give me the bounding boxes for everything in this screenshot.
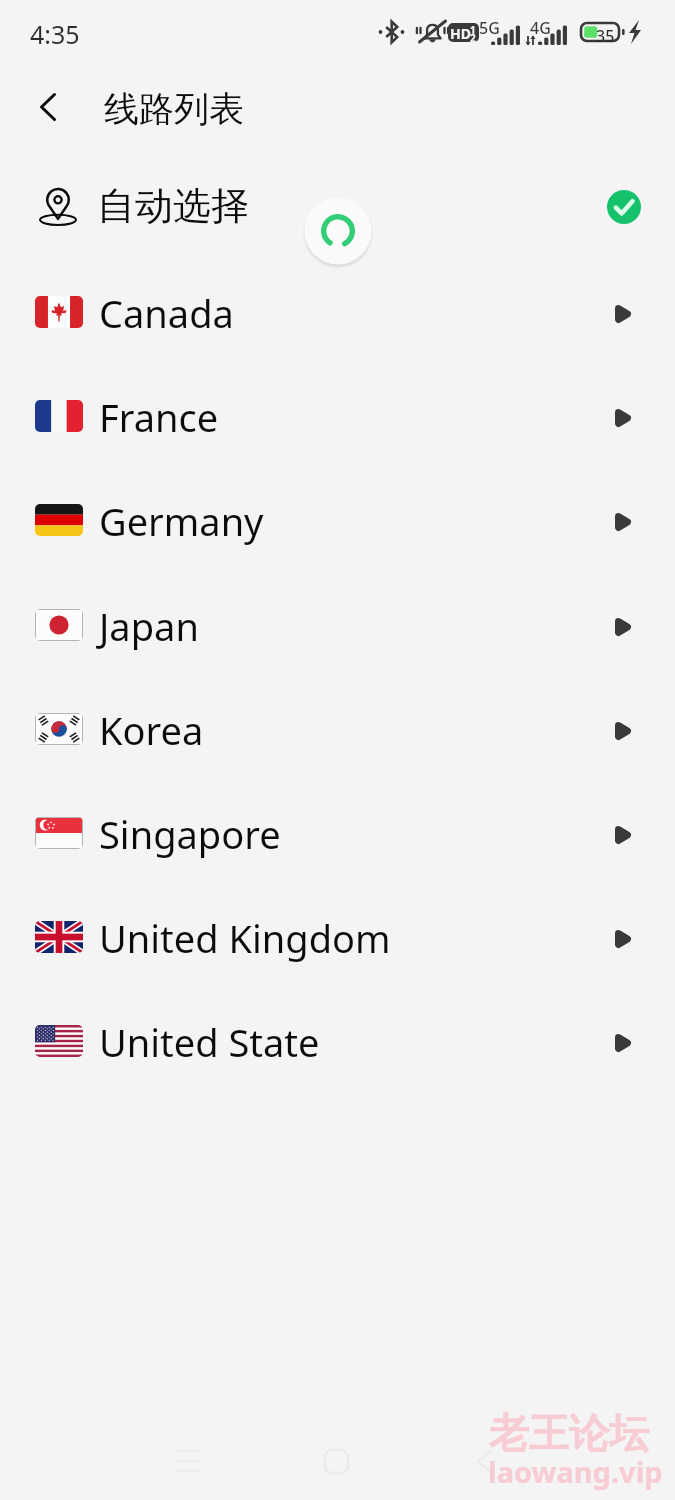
staticText: Germany <box>99 495 264 547</box>
button[interactable]: Back <box>454 1431 514 1491</box>
button[interactable]: 自动选择 <box>0 155 675 259</box>
button[interactable]: France <box>0 366 675 470</box>
staticText: 1 <box>470 23 476 37</box>
staticText: Singapore <box>99 808 281 860</box>
button[interactable]: Back <box>24 83 72 131</box>
button[interactable]: Korea <box>0 679 675 783</box>
staticText: 老王论坛 <box>489 1408 649 1458</box>
staticText: France <box>99 391 219 443</box>
button[interactable]: United State <box>0 991 675 1095</box>
staticText: United Kingdom <box>99 912 391 964</box>
staticText: 自动选择 <box>97 182 249 230</box>
other: Selected <box>607 190 641 224</box>
button[interactable]: United Kingdom <box>0 887 675 991</box>
staticText: Japan <box>99 600 199 652</box>
staticText: 4:35 <box>30 17 80 51</box>
button[interactable]: Canada <box>0 262 675 366</box>
staticText: 4G <box>530 17 551 39</box>
staticText: laowang.vip <box>488 1452 663 1491</box>
staticText: Canada <box>99 287 234 339</box>
button[interactable]: Germany <box>0 470 675 574</box>
staticText: 5G <box>479 17 500 39</box>
button[interactable]: Singapore <box>0 783 675 887</box>
staticText: 线路列表 <box>104 87 244 131</box>
staticText: HD <box>450 24 471 43</box>
staticText: 2 <box>470 31 476 45</box>
staticText: 35 <box>596 25 615 47</box>
staticText: United State <box>99 1016 320 1068</box>
staticText: Korea <box>99 704 204 756</box>
button[interactable]: Japan <box>0 575 675 679</box>
